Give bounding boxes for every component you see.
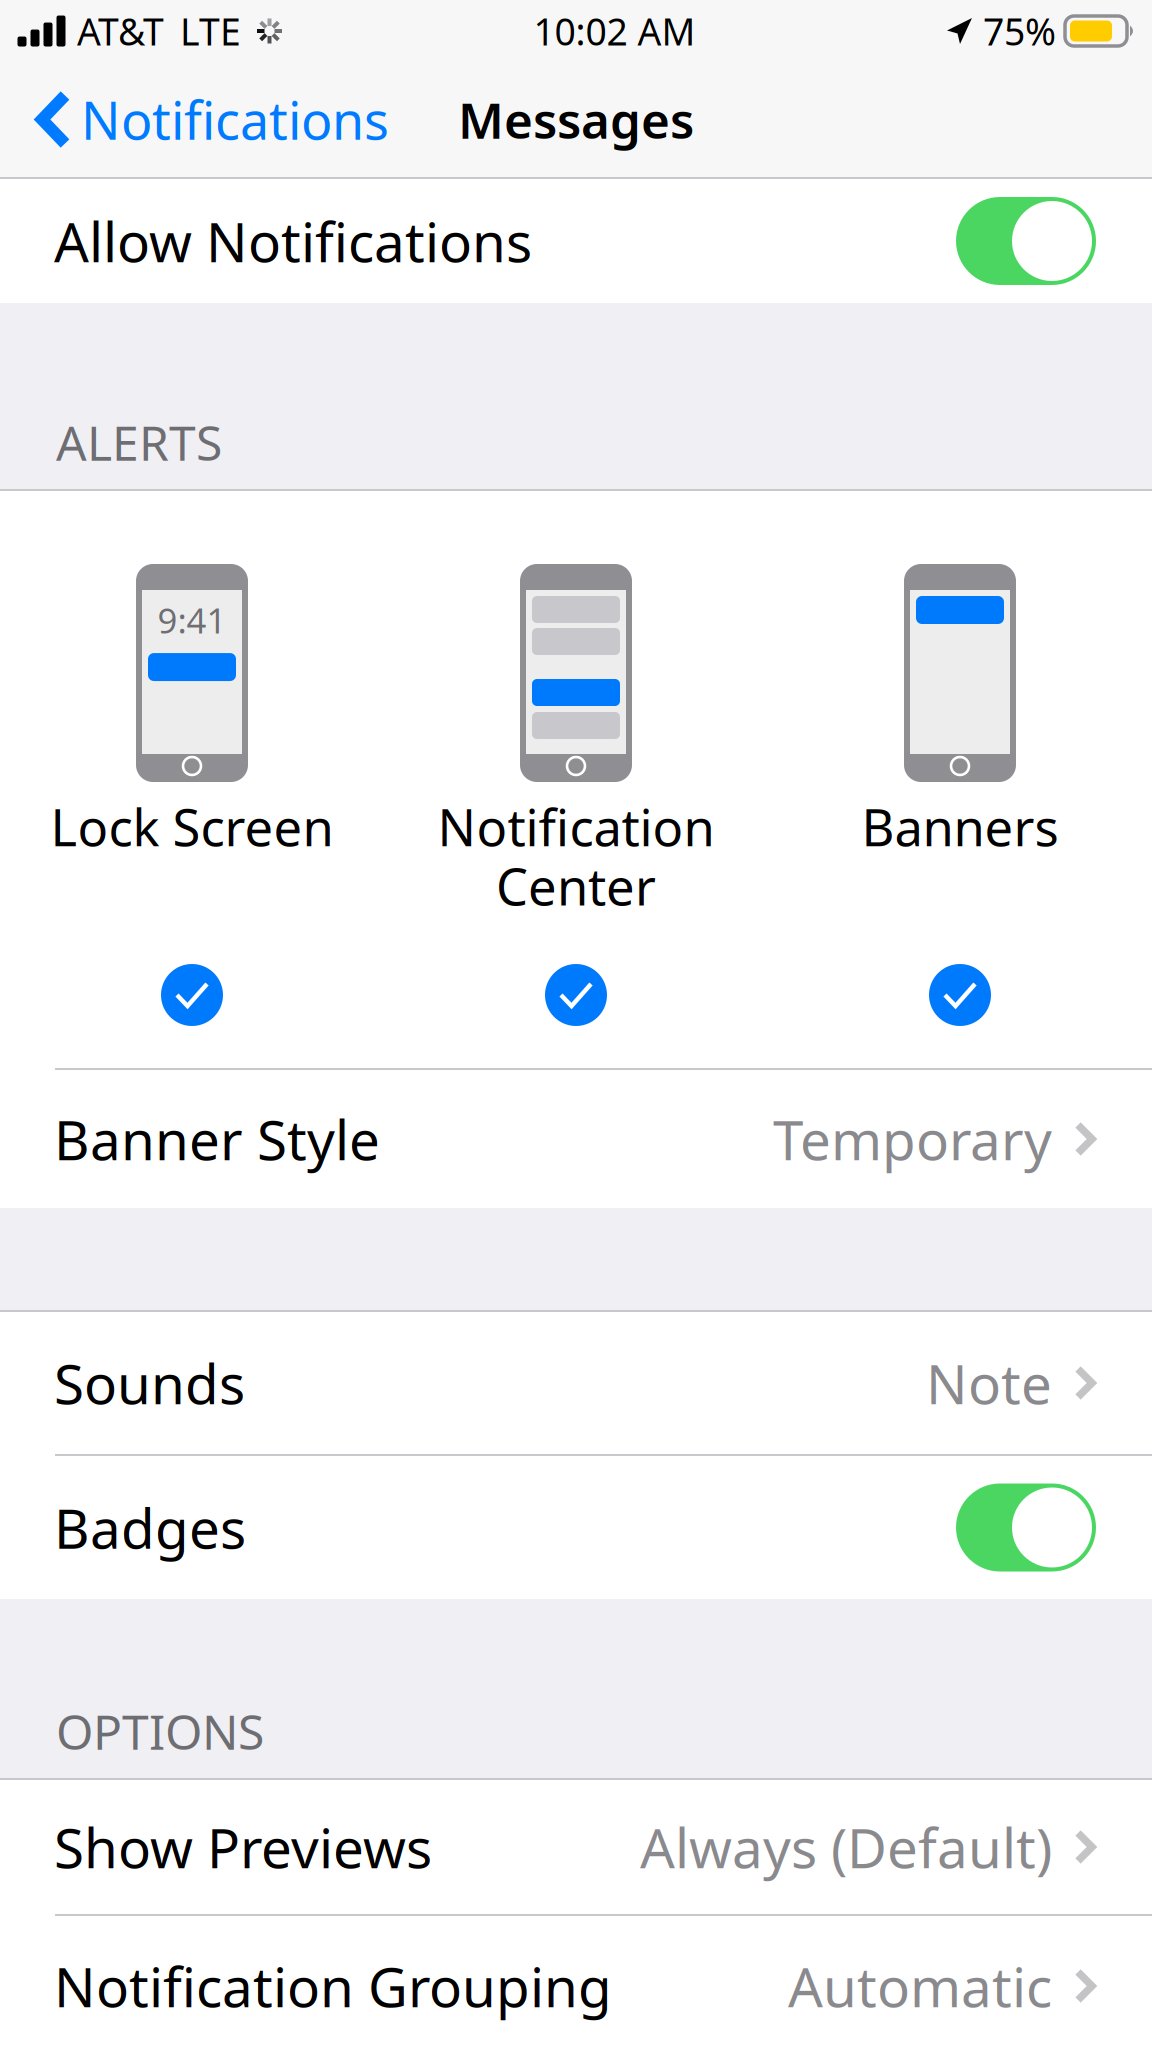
button[interactable]: Banners bbox=[768, 491, 1152, 1068]
staticText: OPTIONS bbox=[56, 1699, 264, 1763]
button[interactable]: Sounds bbox=[0, 1312, 1152, 1454]
button[interactable]: Badges bbox=[0, 1456, 1152, 1599]
staticText: Banners bbox=[861, 793, 1058, 860]
staticText: ALERTS bbox=[56, 410, 222, 474]
staticText: Allow Notifications bbox=[54, 205, 532, 277]
button[interactable]: Show Previews bbox=[0, 1780, 1152, 1914]
staticText: Automatic bbox=[788, 1950, 1052, 2022]
staticText: Banner Style bbox=[54, 1103, 380, 1175]
staticText: Note bbox=[926, 1347, 1052, 1419]
staticText: Notification Grouping bbox=[54, 1950, 612, 2022]
button[interactable]: 9:41 bbox=[0, 491, 384, 1068]
staticText: 10:02 AM bbox=[533, 6, 695, 56]
staticText: AT&T bbox=[77, 6, 164, 56]
staticText: Always (Default) bbox=[640, 1811, 1052, 1883]
staticText: LTE bbox=[180, 6, 241, 56]
staticText: Badges bbox=[54, 1491, 246, 1564]
staticText: Notification bbox=[437, 793, 714, 860]
staticText: 9:41 bbox=[157, 597, 226, 643]
button[interactable]: Allow Notifications bbox=[0, 179, 1152, 303]
staticText: Notifications bbox=[81, 85, 389, 154]
button[interactable]: Banner Style bbox=[0, 1070, 1152, 1208]
button[interactable]: Notification Grouping bbox=[0, 1916, 1152, 2048]
staticText: Temporary bbox=[773, 1103, 1052, 1175]
staticText: 75% bbox=[983, 6, 1056, 56]
button[interactable]: Back to Notifications bbox=[0, 62, 405, 177]
staticText: Center bbox=[496, 852, 656, 920]
staticText: Messages bbox=[458, 87, 694, 152]
button[interactable]: Notification bbox=[384, 491, 768, 1068]
staticText: Lock Screen bbox=[50, 793, 333, 860]
staticText: Show Previews bbox=[54, 1811, 432, 1883]
staticText: Sounds bbox=[54, 1347, 245, 1419]
